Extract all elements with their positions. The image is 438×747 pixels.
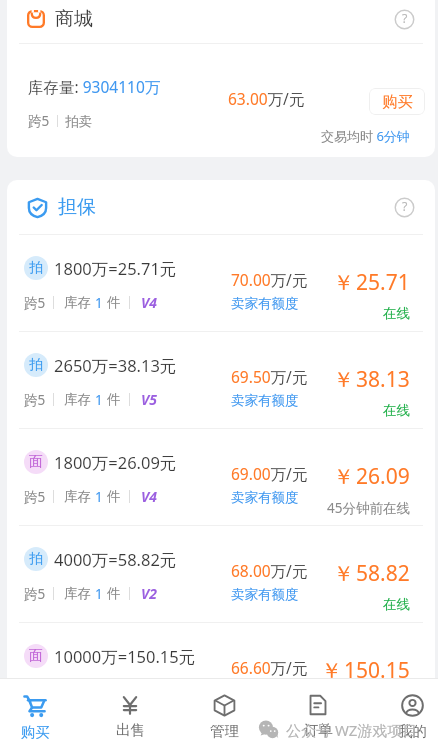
- staticText: 库存: [64, 585, 91, 602]
- staticText: 25.71: [356, 268, 410, 297]
- staticText: ?: [402, 198, 408, 215]
- staticText: 件: [107, 391, 121, 408]
- staticText: 订单: [304, 721, 333, 739]
- staticText: 1800万=26.09元: [54, 451, 177, 474]
- staticText: 在线: [383, 596, 410, 613]
- staticText: V2: [141, 584, 157, 603]
- staticText: 商城: [55, 7, 93, 31]
- staticText: 库存: [64, 488, 91, 505]
- staticText: V4: [141, 293, 157, 312]
- staticText: 1: [95, 488, 103, 506]
- staticText: 2650万=38.13元: [54, 354, 177, 377]
- staticText: 45分钟前在线: [327, 499, 410, 517]
- staticText: 件: [107, 585, 121, 602]
- staticText: 拍卖: [65, 113, 92, 130]
- staticText: 63.00万/元: [228, 88, 305, 109]
- staticText: 跨5: [24, 294, 46, 312]
- staticText: 跨5: [24, 488, 46, 506]
- staticText: 38.13: [356, 365, 410, 394]
- staticText: ￥: [333, 367, 354, 393]
- staticText: 在线: [383, 305, 410, 322]
- staticText: 69.50万/元: [231, 366, 308, 387]
- staticText: V4: [141, 487, 157, 506]
- staticText: 拍: [29, 356, 43, 374]
- staticText: 管理: [210, 722, 239, 740]
- staticText: 交易均时 6分钟: [321, 127, 410, 145]
- staticText: 4000万=58.82元: [54, 548, 177, 571]
- button[interactable]: Help: [390, 5, 418, 33]
- staticText: 68.00万/元: [231, 560, 308, 581]
- staticText: 跨5: [24, 391, 46, 409]
- staticText: 面: [29, 453, 43, 471]
- button[interactable]: 购买: [0, 679, 79, 747]
- staticText: 10000万=150.15元: [54, 645, 196, 668]
- button[interactable]: 购买: [369, 88, 425, 115]
- button[interactable]: 库存量: 9304110万: [7, 44, 435, 157]
- staticText: 66.60万/元: [231, 657, 308, 678]
- button[interactable]: 面: [7, 623, 435, 678]
- staticText: 购买: [21, 723, 50, 741]
- staticText: 1800万=25.71元: [54, 257, 177, 280]
- staticText: V5: [141, 390, 157, 409]
- staticText: 面: [29, 647, 43, 665]
- staticText: 库存: [64, 294, 91, 311]
- staticText: 卖家有额度: [231, 392, 299, 409]
- button[interactable]: 面: [7, 429, 435, 525]
- button[interactable]: 拍: [7, 235, 435, 331]
- staticText: 1: [95, 294, 103, 312]
- staticText: 卖家有额度: [231, 586, 299, 603]
- staticText: 卖家有额度: [231, 489, 299, 506]
- staticText: 1: [95, 391, 103, 409]
- staticText: 26.09: [356, 462, 410, 491]
- staticText: 1: [95, 585, 103, 603]
- staticText: ￥: [333, 270, 354, 296]
- button[interactable]: 出售: [86, 679, 174, 747]
- button[interactable]: 我的: [368, 679, 438, 747]
- staticText: 出售: [116, 721, 145, 739]
- staticText: 跨5: [28, 112, 50, 130]
- staticText: 件: [107, 294, 121, 311]
- button[interactable]: Help: [390, 193, 418, 221]
- staticText: 库存量: 9304110万: [28, 76, 161, 97]
- staticText: 69.00万/元: [231, 463, 308, 484]
- staticText: 库存: [64, 391, 91, 408]
- staticText: 件: [107, 488, 121, 505]
- staticText: 我的: [398, 722, 427, 740]
- staticText: 150.15: [344, 656, 410, 678]
- staticText: 拍: [29, 550, 43, 568]
- button[interactable]: 拍: [7, 332, 435, 428]
- staticText: ￥: [333, 464, 354, 490]
- button[interactable]: 订单: [274, 679, 362, 747]
- staticText: 拍: [29, 259, 43, 277]
- staticText: 58.82: [356, 559, 410, 588]
- staticText: ?: [402, 10, 408, 27]
- staticText: 跨5: [24, 585, 46, 603]
- staticText: 在线: [383, 402, 410, 419]
- staticText: ￥: [333, 561, 354, 587]
- button[interactable]: 拍: [7, 526, 435, 622]
- staticText: 购买: [382, 92, 413, 112]
- staticText: ￥: [321, 658, 342, 678]
- staticText: 公众号 WZ游戏项目: [286, 720, 418, 740]
- staticText: 担保: [58, 195, 96, 219]
- staticText: 卖家有额度: [231, 295, 299, 312]
- staticText: 70.00万/元: [231, 269, 308, 290]
- button[interactable]: 管理: [180, 679, 268, 747]
